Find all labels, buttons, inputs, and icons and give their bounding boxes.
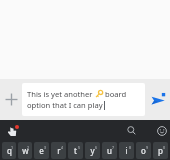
staticText: 2 bbox=[27, 145, 30, 150]
button[interactable]: Send bbox=[145, 79, 170, 120]
staticText: q bbox=[7, 145, 12, 156]
staticText: r bbox=[57, 145, 61, 156]
staticText: o bbox=[141, 145, 146, 156]
staticText: 0 bbox=[163, 145, 166, 150]
button[interactable]: Add attachment bbox=[0, 79, 22, 120]
button[interactable]: w bbox=[18, 142, 32, 159]
button[interactable]: t bbox=[68, 142, 83, 159]
button[interactable]: Emoji bbox=[152, 121, 170, 140]
staticText: 1 bbox=[11, 145, 14, 150]
button[interactable]: e bbox=[34, 142, 49, 159]
staticText: t bbox=[74, 145, 77, 156]
button[interactable]: o bbox=[136, 142, 151, 159]
staticText: 6 bbox=[95, 145, 98, 150]
staticText: 9 bbox=[146, 145, 149, 150]
button[interactable]: Search bbox=[122, 121, 141, 140]
staticText: 8 bbox=[129, 145, 132, 150]
staticText: u bbox=[107, 145, 112, 156]
staticText: w bbox=[22, 145, 29, 156]
button[interactable]: This is yet another bbox=[22, 83, 145, 116]
staticText: option that I can play bbox=[27, 100, 103, 110]
staticText: 4 bbox=[61, 145, 64, 150]
button[interactable]: r bbox=[51, 142, 66, 159]
button[interactable]: i bbox=[119, 142, 134, 159]
staticText: 7 bbox=[112, 145, 115, 150]
button[interactable]: q bbox=[2, 142, 16, 159]
staticText: p bbox=[158, 145, 163, 156]
button[interactable]: u bbox=[102, 142, 117, 159]
staticText: i bbox=[125, 145, 128, 156]
button[interactable]: p bbox=[153, 142, 168, 159]
staticText: 5 bbox=[78, 145, 81, 150]
staticText: 3 bbox=[44, 145, 47, 150]
staticText: e bbox=[39, 145, 44, 156]
button[interactable]: Keyboard options bbox=[2, 121, 22, 141]
staticText: y bbox=[90, 145, 95, 156]
staticText: This is yet another bbox=[27, 89, 95, 99]
button[interactable]: y bbox=[85, 142, 100, 159]
staticText: board bbox=[103, 89, 127, 99]
